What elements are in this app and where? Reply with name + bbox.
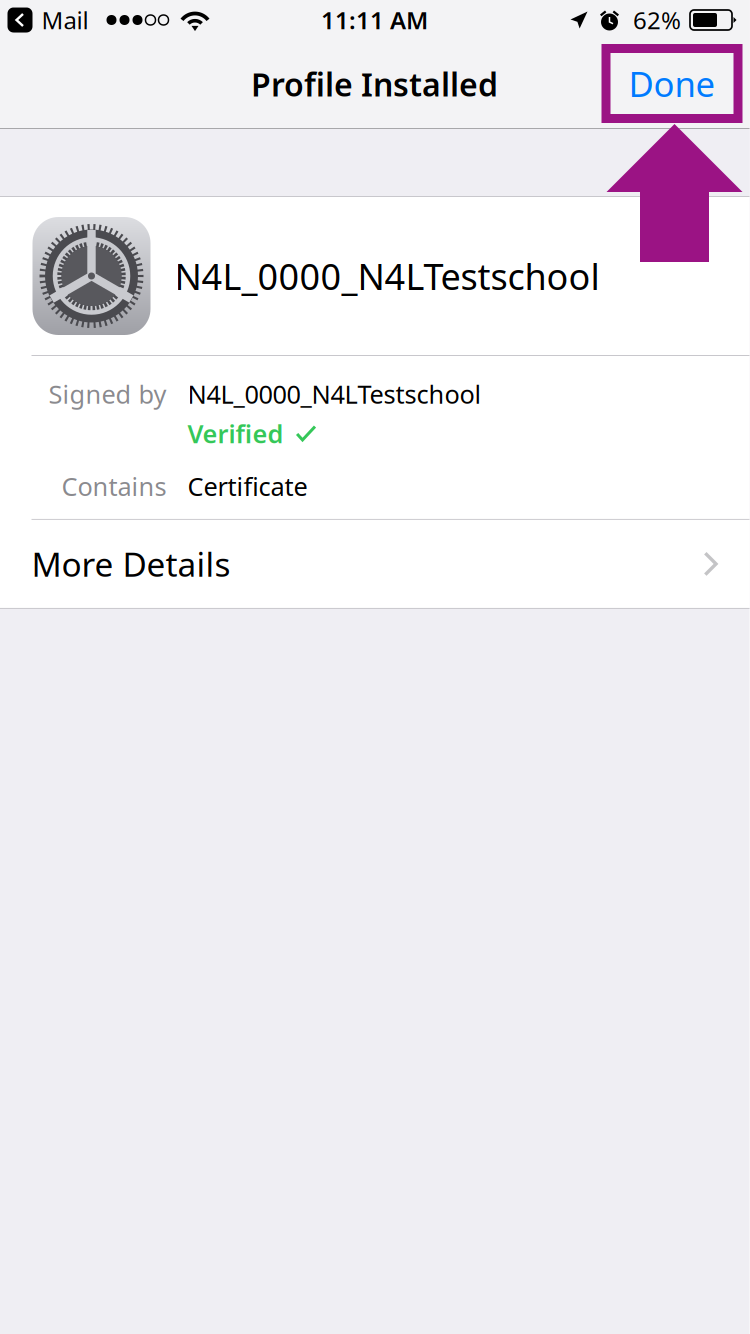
- staticText: N4L_0000_N4LTestschool: [174, 252, 599, 300]
- staticText: Contains: [61, 469, 166, 503]
- staticText: More Details: [31, 542, 230, 586]
- staticText: Certificate: [187, 469, 307, 503]
- staticText: N4L_0000_N4LTestschool: [187, 377, 481, 411]
- staticText: Profile Installed: [251, 63, 498, 105]
- button[interactable]: Done: [601, 44, 742, 123]
- staticText: Done: [628, 60, 715, 106]
- button[interactable]: More Details: [0, 520, 749, 608]
- staticText: 62%: [633, 4, 681, 36]
- staticText: 11:11 AM: [321, 4, 428, 36]
- staticText: Signed by: [48, 377, 166, 411]
- staticText: Verified: [187, 417, 283, 450]
- staticText: Mail: [41, 4, 88, 36]
